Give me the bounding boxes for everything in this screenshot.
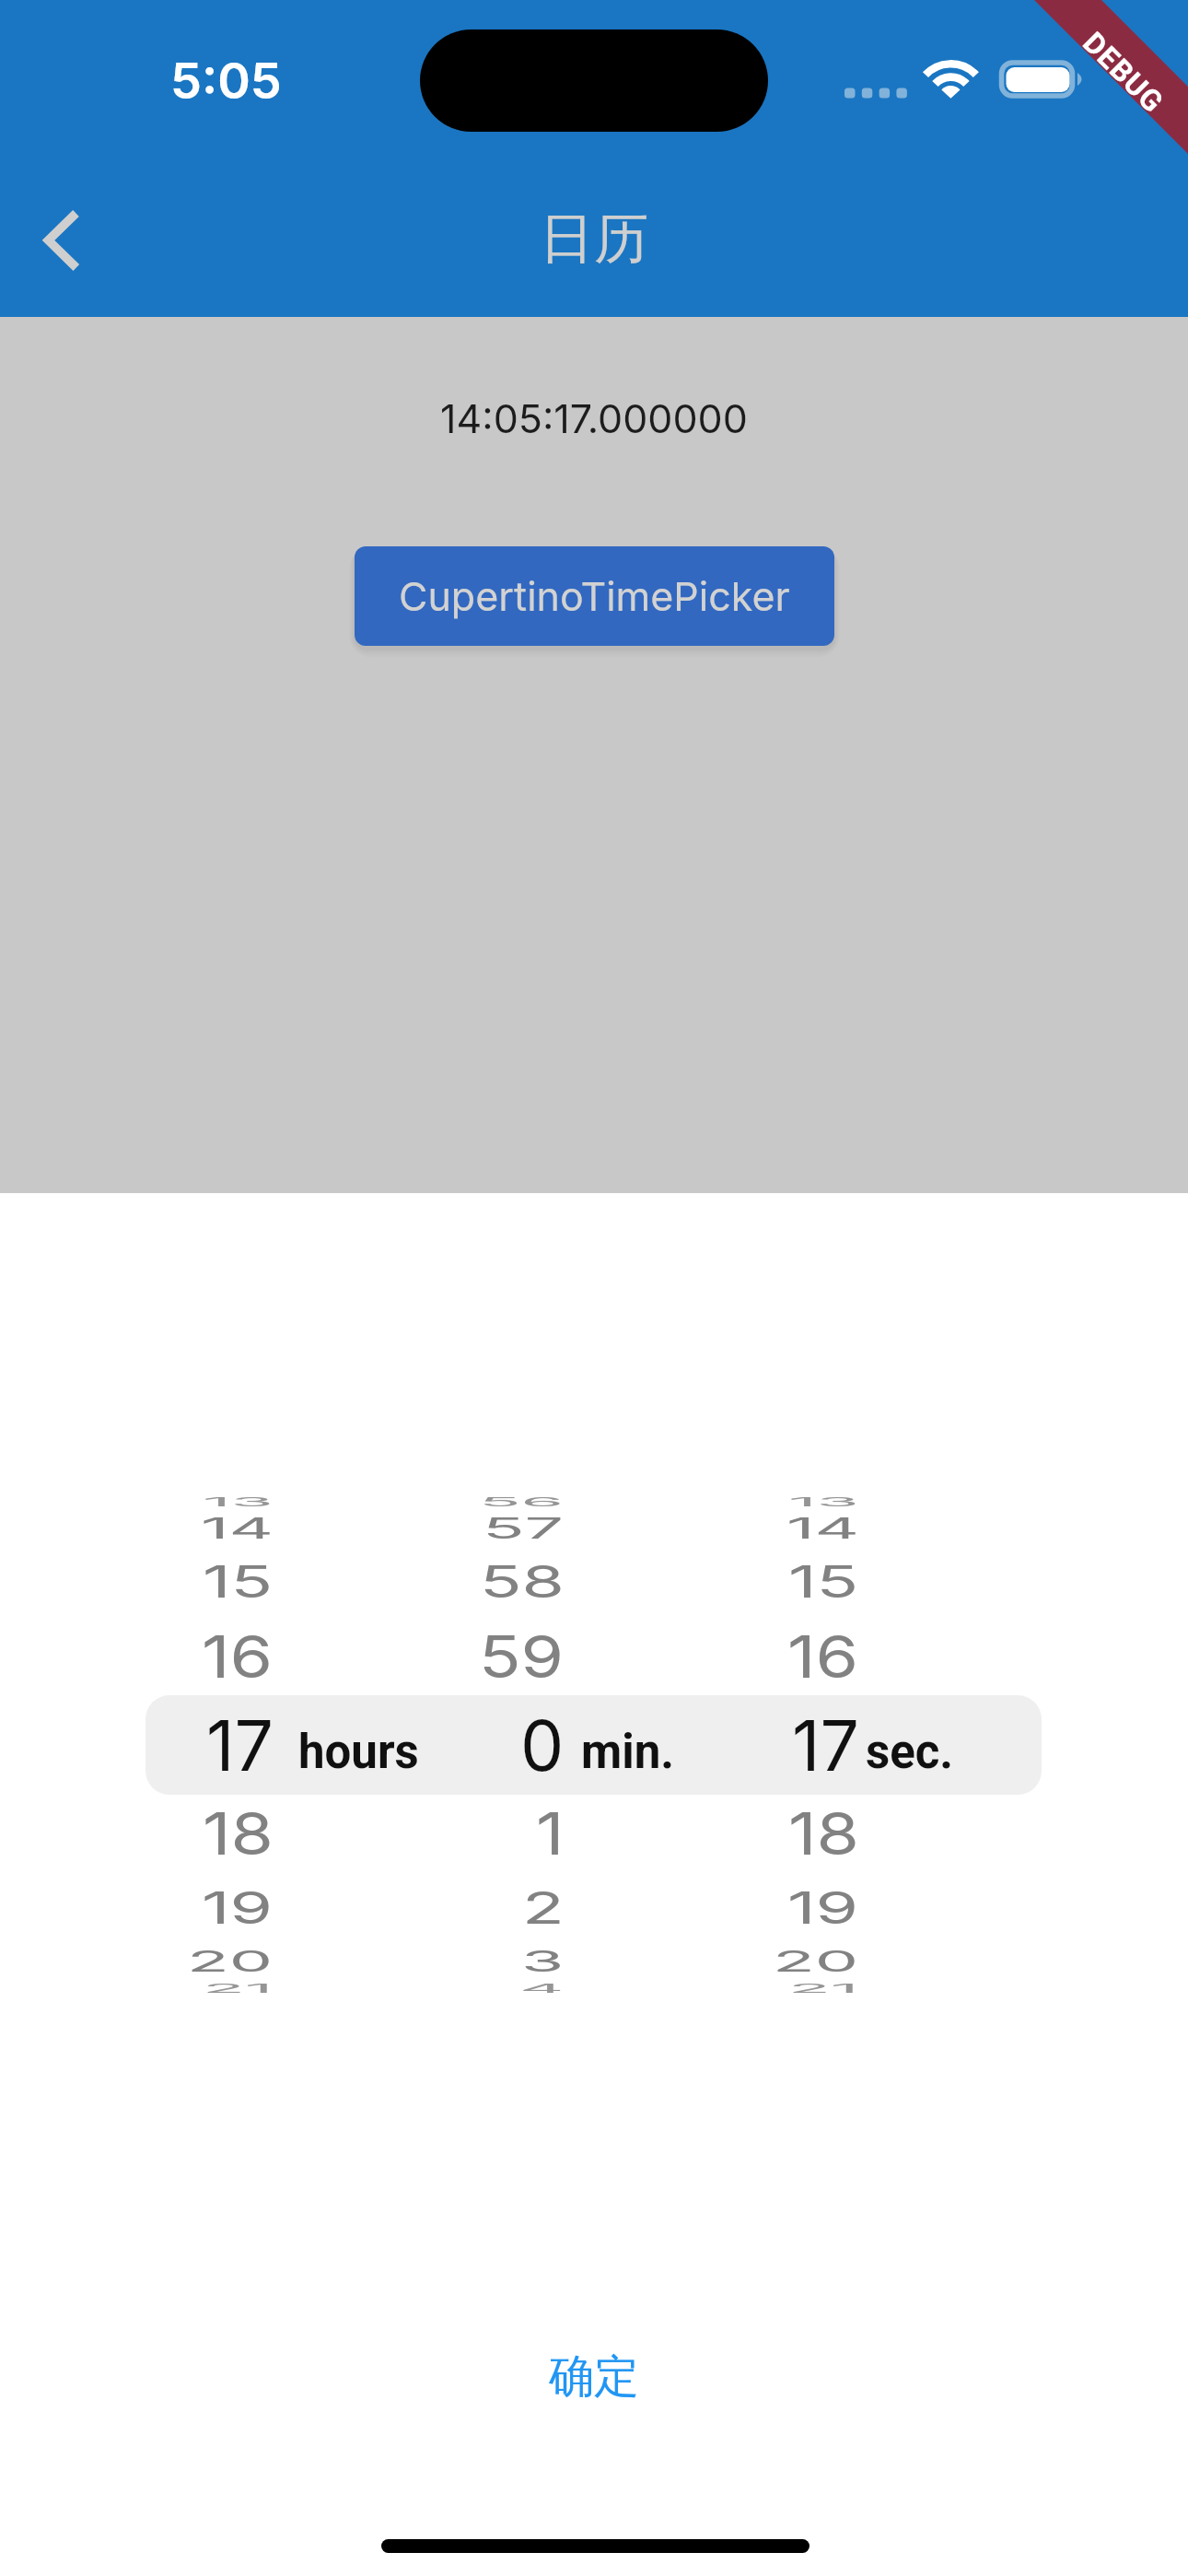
staticText: 5:05 xyxy=(170,51,282,111)
button[interactable]: Minutes xyxy=(442,1474,746,2018)
button[interactable]: Back xyxy=(9,180,129,299)
staticText: 14:05:17.000000 xyxy=(440,394,748,442)
staticText: CupertinoTimePicker xyxy=(399,572,790,620)
staticText: 确定 xyxy=(549,2348,639,2406)
staticText: 日历 xyxy=(540,205,648,273)
button[interactable]: 确定 xyxy=(484,2321,704,2433)
button[interactable]: CupertinoTimePicker xyxy=(355,546,834,646)
button[interactable]: Seconds xyxy=(746,1474,1050,2018)
button[interactable]: Hours xyxy=(138,1474,442,2018)
